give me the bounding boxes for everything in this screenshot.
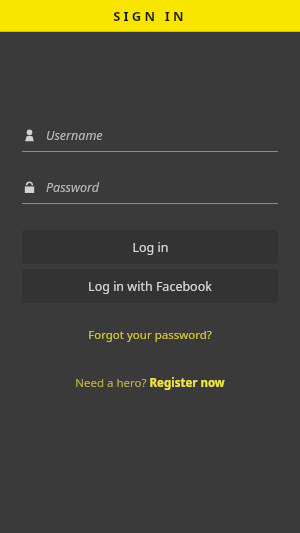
staticText: Log in [132, 239, 169, 256]
button[interactable]: Log in with Facebook [22, 269, 278, 303]
staticText: SIGN IN [113, 7, 187, 25]
staticText: Need a hero? Register now [75, 375, 225, 391]
staticText: Forgot your password? [88, 327, 212, 343]
button[interactable]: Need a hero? Register now [22, 371, 278, 395]
staticText: Log in with Facebook [88, 278, 212, 295]
staticText: Username [46, 127, 103, 144]
staticText: Password [46, 179, 100, 196]
button[interactable]: Password field [22, 176, 278, 204]
button[interactable]: Username field [22, 124, 278, 152]
button[interactable]: Forgot your password? [22, 323, 278, 347]
button[interactable]: Log in [22, 230, 278, 264]
